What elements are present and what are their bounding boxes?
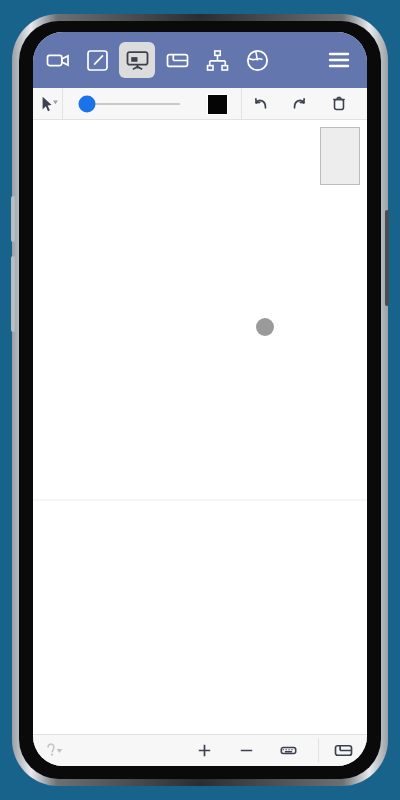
button[interactable]: Colour [193,88,241,120]
button[interactable]: Redo [280,88,318,120]
button[interactable]: Globe [239,42,275,78]
button[interactable]: Keyboard [274,736,302,764]
button[interactable]: Whiteboard [119,42,155,78]
button[interactable]: Delete [318,88,360,120]
button[interactable]: Stroke size [63,88,193,120]
button[interactable]: Pages [319,734,367,766]
button[interactable]: Help [33,734,73,766]
button[interactable]: Org chart [199,42,235,78]
button[interactable]: Zoom in [190,736,218,764]
button[interactable]: Menu [317,38,361,82]
button[interactable]: Select tool [33,88,62,120]
button[interactable]: Folder [159,42,195,78]
button[interactable]: Zoom out [232,736,260,764]
button[interactable]: Notes [79,42,115,78]
button[interactable]: Undo [242,88,280,120]
button[interactable]: Record video [39,42,75,78]
